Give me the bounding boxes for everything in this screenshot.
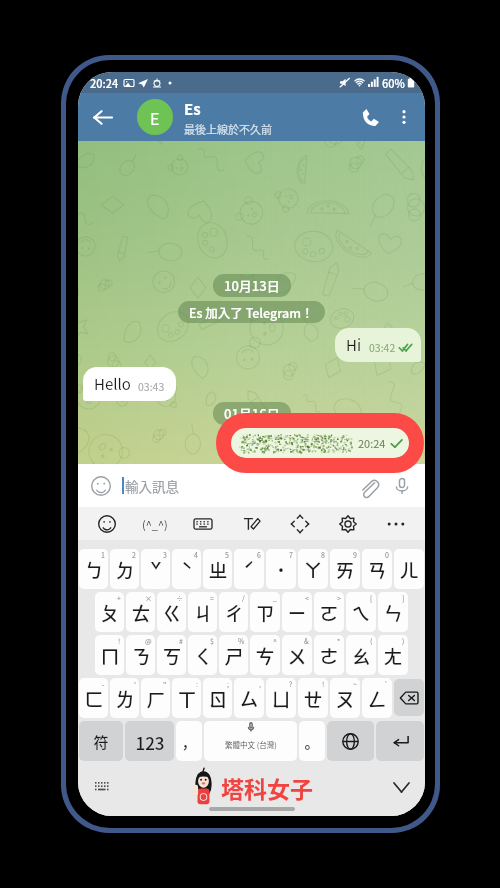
staticText: E <box>150 106 160 129</box>
button[interactable]: ㄕ <box>219 635 248 675</box>
staticText: & <box>304 636 309 646</box>
button[interactable]: 繁體中文 (台灣) <box>204 721 297 761</box>
button[interactable]: ㄊ <box>126 592 155 632</box>
button[interactable]: Enter <box>376 721 424 761</box>
button[interactable]: ㄑ <box>188 635 217 675</box>
button[interactable]: Kaomoji <box>132 509 178 539</box>
button[interactable]: 。 <box>299 721 325 761</box>
button[interactable]: ㄦ <box>394 549 424 589</box>
button[interactable]: ㄖ <box>203 678 232 718</box>
button[interactable]: ㄏ <box>141 678 170 718</box>
staticText: ㄥ <box>367 685 387 713</box>
staticText: Es 加入了 Telegram！ <box>189 303 314 321</box>
button[interactable]: More <box>373 509 419 539</box>
button[interactable]: Voice message <box>389 473 415 499</box>
button[interactable]: Back <box>84 99 120 135</box>
staticText: 5 <box>225 550 229 560</box>
button[interactable]: ㄤ <box>378 635 408 675</box>
button[interactable]: ㄌ <box>110 678 139 718</box>
button[interactable]: ㄙ <box>234 678 264 718</box>
staticText: ㄚ <box>303 556 323 584</box>
staticText: * <box>337 636 341 646</box>
staticText: ㄎ <box>162 642 182 670</box>
button[interactable]: ㄢ <box>362 549 392 589</box>
button[interactable]: Handwriting <box>229 509 275 539</box>
button[interactable]: ㄐ <box>188 592 217 632</box>
staticText: ㄉ <box>115 556 135 584</box>
button[interactable]: ˋ <box>172 549 201 589</box>
staticText: 03:42 <box>369 340 396 355</box>
staticText: ㄕ <box>224 642 244 670</box>
staticText: [ <box>370 593 373 603</box>
button[interactable]: ， <box>176 721 202 761</box>
staticText: 60% <box>382 75 405 91</box>
button[interactable]: ˊ <box>234 549 264 589</box>
button[interactable]: ㄥ <box>362 678 392 718</box>
staticText: " <box>163 679 167 689</box>
staticText: 7 <box>289 550 293 560</box>
button[interactable]: ㄘ <box>250 635 280 675</box>
button[interactable]: ㄨ <box>282 635 312 675</box>
button[interactable]: Attach <box>355 473 381 499</box>
button[interactable]: ㄅ <box>79 549 108 589</box>
button[interactable]: ㄡ <box>330 678 360 718</box>
button[interactable]: ㄞ <box>330 549 360 589</box>
button[interactable]: ㄔ <box>219 592 248 632</box>
button[interactable]: Keyboard layout <box>90 775 114 799</box>
button[interactable]: 符 <box>79 721 123 761</box>
staticText: ! <box>322 679 325 689</box>
button[interactable]: Emoji <box>84 509 130 539</box>
staticText: ÷ <box>176 593 183 603</box>
button[interactable]: Call <box>353 100 387 134</box>
button[interactable]: ㄇ <box>95 635 124 675</box>
staticText: # <box>179 636 183 646</box>
staticText: 03:43 <box>138 379 165 394</box>
button[interactable]: Emoji <box>88 473 114 499</box>
button[interactable]: ˇ <box>141 549 170 589</box>
button[interactable]: ㄜ <box>314 635 344 675</box>
staticText: 3 <box>163 550 167 560</box>
button[interactable]: ㄗ <box>250 592 280 632</box>
button[interactable]: Change language <box>327 721 374 761</box>
button[interactable]: Backspace <box>394 679 424 716</box>
button[interactable]: ㄟ <box>346 592 376 632</box>
button[interactable]: ㄩ <box>266 678 296 718</box>
staticText: Es <box>184 98 201 120</box>
button[interactable]: 123 <box>125 721 174 761</box>
button[interactable]: ㄈ <box>79 678 108 718</box>
staticText: ㄒ <box>177 685 197 713</box>
button[interactable]: Settings <box>325 509 371 539</box>
button[interactable]: ㄠ <box>346 635 376 675</box>
staticText: ㄌ <box>115 685 135 713</box>
button[interactable]: ㄝ <box>298 678 328 718</box>
button[interactable]: ㄧ <box>282 592 312 632</box>
button[interactable]: E <box>137 99 173 135</box>
button[interactable]: Move cursor <box>277 509 323 539</box>
button[interactable]: Keyboard <box>180 509 226 539</box>
staticText: _ <box>273 593 277 603</box>
staticText: ㄘ <box>255 642 275 670</box>
staticText: Hi <box>346 334 362 356</box>
staticText: ㄦ <box>399 556 419 584</box>
button[interactable]: ㄓ <box>203 549 232 589</box>
staticText: ; <box>227 679 229 689</box>
button[interactable]: ㄆ <box>95 592 124 632</box>
staticText: ㄟ <box>351 599 371 627</box>
button[interactable]: ㄎ <box>157 635 186 675</box>
staticText: 20:24 <box>90 75 119 91</box>
staticText: 01月16日 <box>224 404 280 423</box>
staticText: ㄓ <box>208 556 228 584</box>
button[interactable]: ㄒ <box>172 678 201 718</box>
button[interactable]: ㄚ <box>298 549 328 589</box>
button[interactable]: ㄋ <box>126 635 155 675</box>
button[interactable]: ˙ <box>266 549 296 589</box>
button[interactable]: ㄛ <box>314 592 344 632</box>
button[interactable]: ㄣ <box>378 592 408 632</box>
button[interactable]: More options <box>389 102 419 132</box>
staticText: ㄡ <box>335 685 355 713</box>
staticText: ㄋ <box>131 642 151 670</box>
button[interactable]: Hide keyboard <box>389 775 413 799</box>
button[interactable]: ㄍ <box>157 592 186 632</box>
button[interactable]: ㄉ <box>110 549 139 589</box>
staticText: × <box>145 593 152 603</box>
